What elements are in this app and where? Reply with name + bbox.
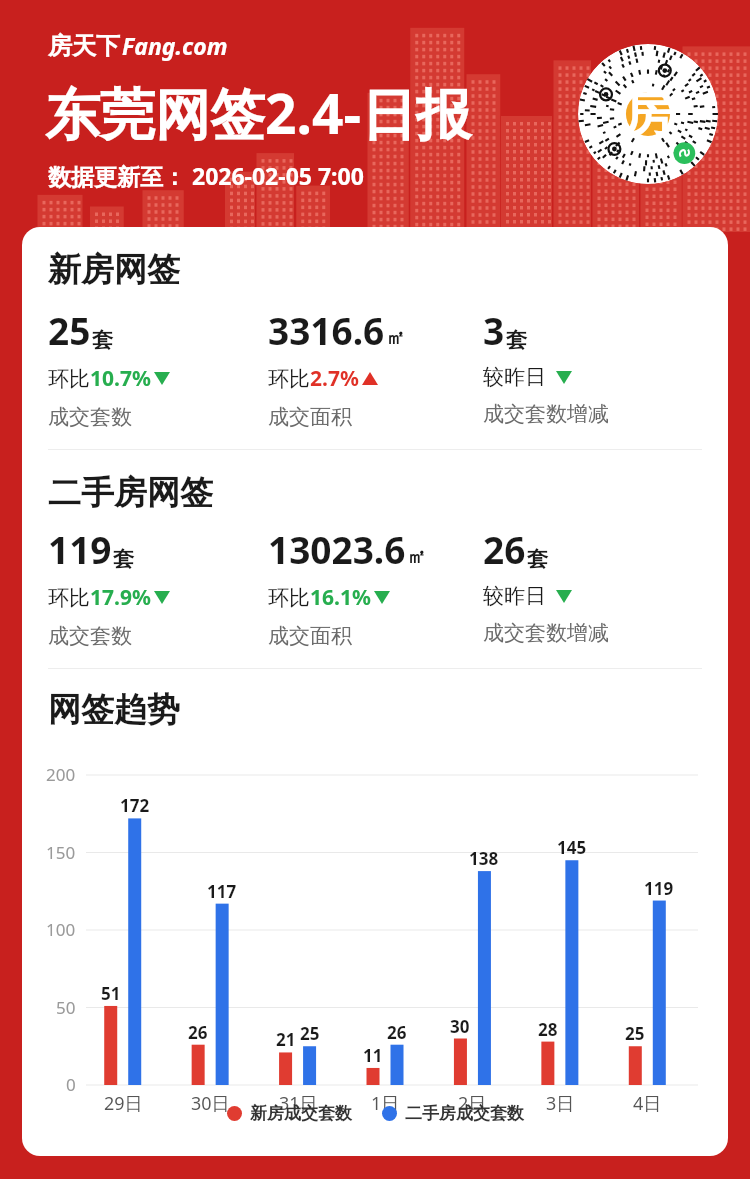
staticText: 套 [506, 327, 527, 353]
staticText: 13023.6 [268, 524, 406, 574]
staticText: 145 [557, 836, 587, 859]
staticText: 119 [48, 524, 112, 574]
staticText: 4日 [633, 1091, 662, 1116]
staticText: 较昨日 [483, 583, 546, 609]
staticText: 东莞网签2.4-日报 [45, 75, 471, 150]
staticText: 套 [92, 327, 113, 353]
staticText: 10.7% [90, 364, 151, 393]
staticText: 172 [120, 794, 150, 817]
staticText: 0 [66, 1073, 76, 1096]
button[interactable]: 13023.6 [268, 524, 426, 648]
staticText: 25 [625, 1022, 645, 1045]
staticText: ㎡ [407, 545, 426, 569]
staticText: 环比 [268, 366, 310, 392]
button[interactable]: 3316.6 [268, 305, 405, 429]
button[interactable]: 小程序二维码 [578, 44, 718, 184]
staticText: 1日 [371, 1091, 400, 1116]
staticText: 100 [46, 918, 76, 941]
staticText: 138 [469, 847, 499, 870]
staticText: 成交面积 [268, 623, 352, 648]
staticText: 新房成交套数 [250, 1103, 352, 1124]
staticText: 环比 [48, 585, 90, 611]
staticText: Fang.com [122, 30, 228, 61]
button[interactable]: 25 [48, 305, 170, 429]
staticText: 30 [450, 1015, 470, 1038]
staticText: 成交套数 [48, 404, 132, 429]
staticText: 房 [623, 83, 673, 146]
staticText: 成交套数 [48, 623, 132, 648]
staticText: 21 [276, 1028, 296, 1051]
button[interactable]: 新房成交套数 [227, 1103, 352, 1124]
staticText: 29日 [104, 1091, 143, 1116]
staticText: 数据更新至： 2026-02-05 7:00 [48, 160, 364, 191]
staticText: 较昨日 [483, 364, 546, 390]
staticText: 50 [56, 996, 76, 1019]
button[interactable]: 二手房成交套数 [382, 1103, 524, 1124]
staticText: 房天下 [48, 31, 120, 61]
staticText: 套 [113, 546, 134, 572]
staticText: ㎡ [386, 326, 405, 350]
staticText: 3日 [546, 1091, 575, 1116]
staticText: 环比 [48, 366, 90, 392]
staticText: 30日 [191, 1091, 230, 1116]
staticText: 119 [644, 877, 674, 900]
staticText: 25 [300, 1022, 320, 1045]
staticText: 网签趋势 [48, 689, 180, 731]
staticText: 26 [387, 1021, 407, 1044]
staticText: 成交套数增减 [483, 401, 609, 427]
staticText: 200 [46, 763, 76, 786]
button[interactable]: 119 [48, 524, 170, 648]
staticText: 28 [538, 1018, 558, 1041]
staticText: 成交套数增减 [483, 620, 609, 646]
staticText: 51 [101, 982, 121, 1005]
staticText: 26 [483, 524, 526, 574]
staticText: 套 [527, 546, 548, 572]
staticText: 二手房成交套数 [405, 1103, 524, 1124]
staticText: 31日 [279, 1091, 318, 1116]
staticText: 成交面积 [268, 404, 352, 429]
staticText: 新房网签 [48, 249, 180, 291]
staticText: 3 [483, 305, 505, 355]
staticText: 16.1% [310, 583, 371, 612]
button[interactable]: 26 [483, 524, 609, 646]
staticText: 2日 [458, 1091, 487, 1116]
staticText: 环比 [268, 585, 310, 611]
staticText: 17.9% [90, 583, 151, 612]
staticText: 25 [48, 305, 91, 355]
button[interactable]: 3 [483, 305, 609, 427]
staticText: 11 [363, 1044, 383, 1067]
staticText: 26 [188, 1021, 208, 1044]
staticText: 3316.6 [268, 305, 385, 355]
staticText: 二手房网签 [48, 472, 213, 514]
staticText: 117 [207, 880, 237, 903]
staticText: 2.7% [310, 364, 359, 393]
staticText: 150 [46, 841, 76, 864]
